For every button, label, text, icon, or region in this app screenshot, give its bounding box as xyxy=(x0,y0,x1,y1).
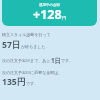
staticText: です。 xyxy=(26,81,39,86)
staticText: が経ちました。 xyxy=(21,44,50,49)
staticText: 次の注文予定日に必要な金額は、 xyxy=(2,70,63,75)
staticText: 円 xyxy=(62,15,67,20)
staticText: +128 xyxy=(33,6,62,23)
button[interactable]: 運用中の金額 xyxy=(2,0,97,26)
staticText: 57日 xyxy=(2,39,21,51)
staticText: 1日 xyxy=(51,56,61,64)
staticText: 135円 xyxy=(2,76,26,88)
staticText: です。 xyxy=(61,58,74,63)
staticText: 次の注文予定日まで、あと xyxy=(2,58,51,63)
staticText: 運用中の金額 xyxy=(39,3,61,7)
staticText: 積立スタイル診断を行って xyxy=(2,32,51,37)
